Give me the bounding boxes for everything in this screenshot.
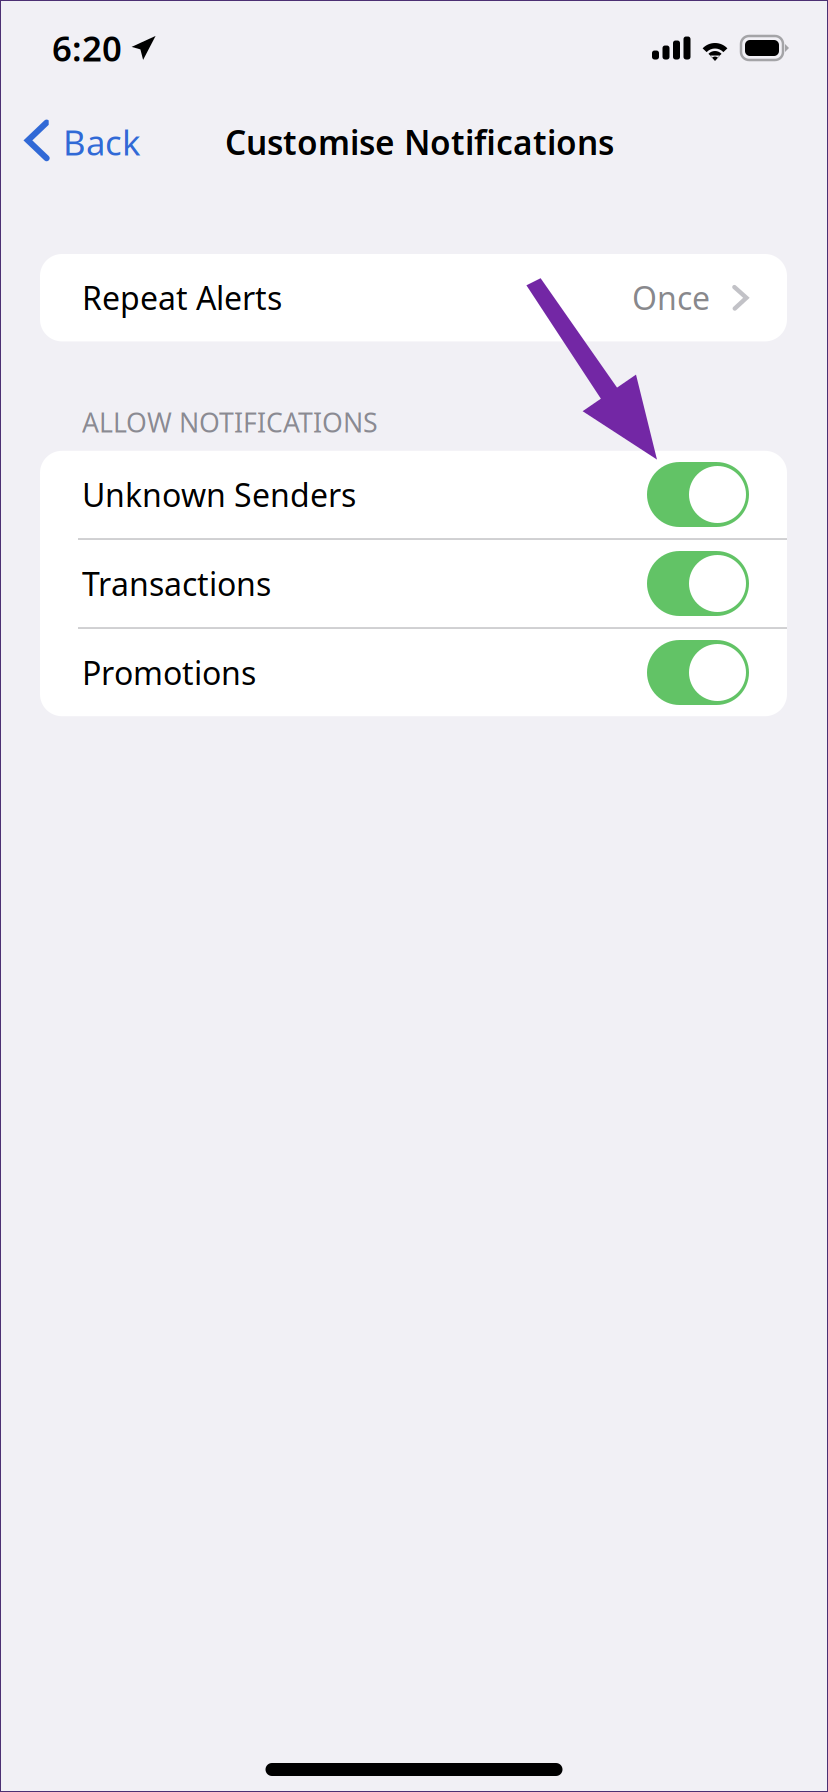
staticText: Unknown Senders [82,473,356,516]
staticText: Customise Notifications [225,120,614,164]
staticText: Repeat Alerts [82,276,282,319]
button[interactable]: Transactions [647,551,749,616]
button[interactable]: Repeat Alerts [40,254,787,341]
button[interactable]: Back [0,96,157,188]
button[interactable]: Promotions [647,640,749,705]
staticText: Once [632,276,710,319]
staticText: Promotions [82,651,256,694]
staticText: ALLOW NOTIFICATIONS [82,404,378,440]
button[interactable]: Unknown Senders [647,462,749,527]
staticText: 6:20 [52,25,122,71]
staticText: Back [63,119,141,165]
staticText: Transactions [82,562,271,605]
